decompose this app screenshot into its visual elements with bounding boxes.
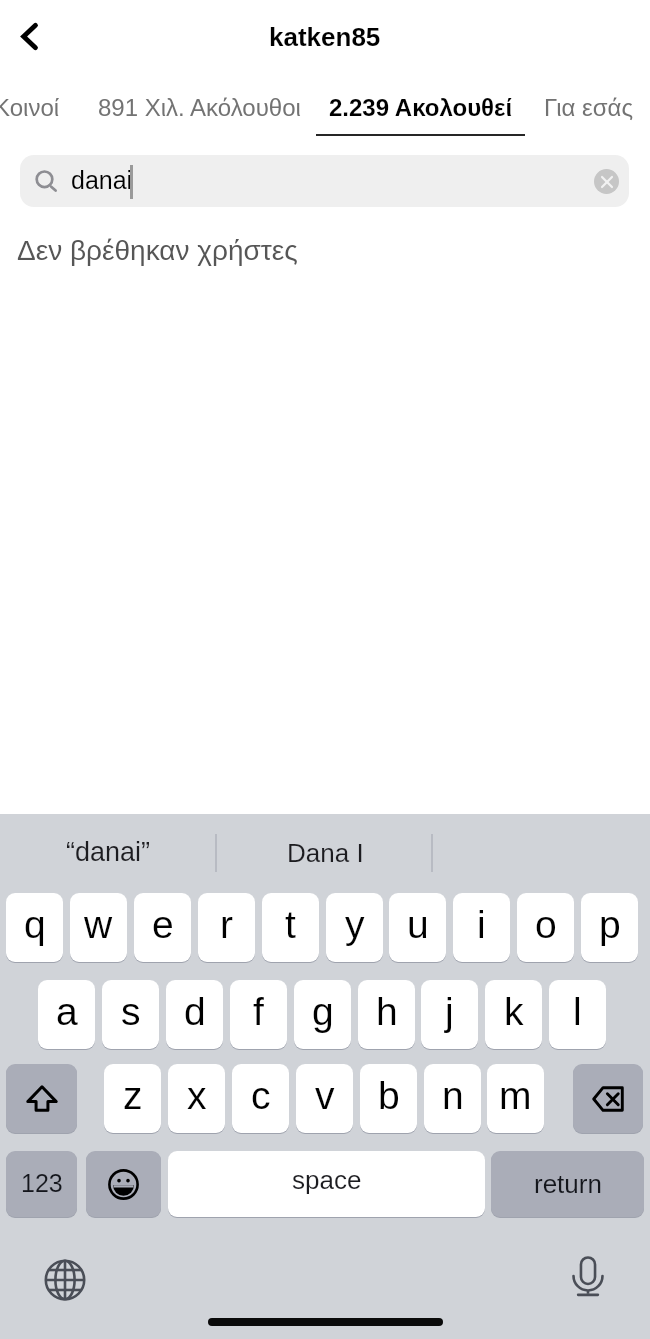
- staticText: i: [477, 903, 486, 947]
- button[interactable]: Shift: [6, 1064, 77, 1133]
- button[interactable]: l: [549, 980, 606, 1049]
- staticText: 123: [21, 1169, 63, 1197]
- button[interactable]: b: [360, 1064, 417, 1133]
- staticText: danai: [71, 166, 133, 194]
- button[interactable]: z: [104, 1064, 161, 1133]
- staticText: l: [573, 990, 582, 1034]
- button[interactable]: r: [198, 893, 255, 962]
- button[interactable]: Change keyboard: [35, 1250, 95, 1310]
- staticText: x: [187, 1074, 207, 1118]
- button[interactable]: t: [262, 893, 319, 962]
- staticText: j: [445, 990, 454, 1034]
- staticText: Κοινοί: [0, 94, 60, 121]
- staticText: q: [24, 903, 46, 947]
- staticText: n: [442, 1074, 464, 1118]
- button[interactable]: a: [38, 980, 95, 1049]
- button[interactable]: Emoji: [86, 1151, 161, 1217]
- button[interactable]: space: [168, 1151, 485, 1217]
- button[interactable]: 123: [6, 1151, 77, 1217]
- staticText: g: [312, 990, 334, 1034]
- staticText: d: [184, 990, 206, 1034]
- button[interactable]: g: [294, 980, 351, 1049]
- staticText: w: [84, 903, 113, 947]
- staticText: s: [121, 990, 141, 1034]
- staticText: Dana I: [287, 838, 364, 867]
- staticText: Για εσάς: [544, 94, 634, 121]
- button[interactable]: danai: [20, 155, 629, 207]
- button[interactable]: i: [453, 893, 510, 962]
- staticText: t: [285, 903, 296, 947]
- button[interactable]: 891 Χιλ. Ακόλουθοι: [94, 78, 305, 136]
- staticText: p: [599, 903, 621, 947]
- button[interactable]: p: [581, 893, 638, 962]
- staticText: k: [504, 990, 524, 1034]
- button[interactable]: Κοινοί: [0, 78, 67, 136]
- button[interactable]: y: [326, 893, 383, 962]
- button[interactable]: Dana I: [217, 814, 434, 890]
- button[interactable]: Dictate: [558, 1247, 618, 1307]
- button[interactable]: “danai”: [0, 814, 217, 890]
- button[interactable]: e: [134, 893, 191, 962]
- staticText: f: [253, 990, 264, 1034]
- staticText: 2.239 Ακολουθεί: [329, 94, 513, 121]
- staticText: return: [534, 1169, 602, 1198]
- staticText: o: [535, 903, 557, 947]
- button[interactable]: x: [168, 1064, 225, 1133]
- button[interactable]: Clear text: [594, 169, 619, 194]
- staticText: “danai”: [66, 837, 151, 867]
- button[interactable]: w: [70, 893, 127, 962]
- staticText: e: [152, 903, 174, 947]
- staticText: space: [292, 1165, 362, 1194]
- button[interactable]: 2.239 Ακολουθεί: [316, 78, 525, 136]
- staticText: z: [123, 1074, 143, 1118]
- staticText: c: [251, 1074, 271, 1118]
- staticText: katken85: [269, 22, 381, 51]
- staticText: a: [56, 990, 78, 1034]
- button[interactable]: u: [389, 893, 446, 962]
- button[interactable]: m: [487, 1064, 544, 1133]
- staticText: v: [315, 1074, 335, 1118]
- staticText: 891 Χιλ. Ακόλουθοι: [98, 94, 301, 121]
- staticText: m: [499, 1074, 532, 1118]
- staticText: r: [220, 903, 233, 947]
- button[interactable]: k: [485, 980, 542, 1049]
- button[interactable]: q: [6, 893, 63, 962]
- button[interactable]: o: [517, 893, 574, 962]
- staticText: b: [378, 1074, 400, 1118]
- button[interactable]: Για εσάς: [534, 78, 643, 136]
- staticText: Δεν βρέθηκαν χρήστες: [17, 235, 298, 266]
- button[interactable]: n: [424, 1064, 481, 1133]
- staticText: y: [345, 903, 365, 947]
- button[interactable]: h: [358, 980, 415, 1049]
- button[interactable]: return: [491, 1151, 644, 1217]
- button[interactable]: Back: [2, 10, 54, 62]
- button[interactable]: v: [296, 1064, 353, 1133]
- button[interactable]: f: [230, 980, 287, 1049]
- button[interactable]: j: [421, 980, 478, 1049]
- button[interactable]: d: [166, 980, 223, 1049]
- button[interactable]: Backspace: [573, 1064, 643, 1133]
- button[interactable]: s: [102, 980, 159, 1049]
- staticText: u: [407, 903, 429, 947]
- staticText: h: [376, 990, 398, 1034]
- button[interactable]: c: [232, 1064, 289, 1133]
